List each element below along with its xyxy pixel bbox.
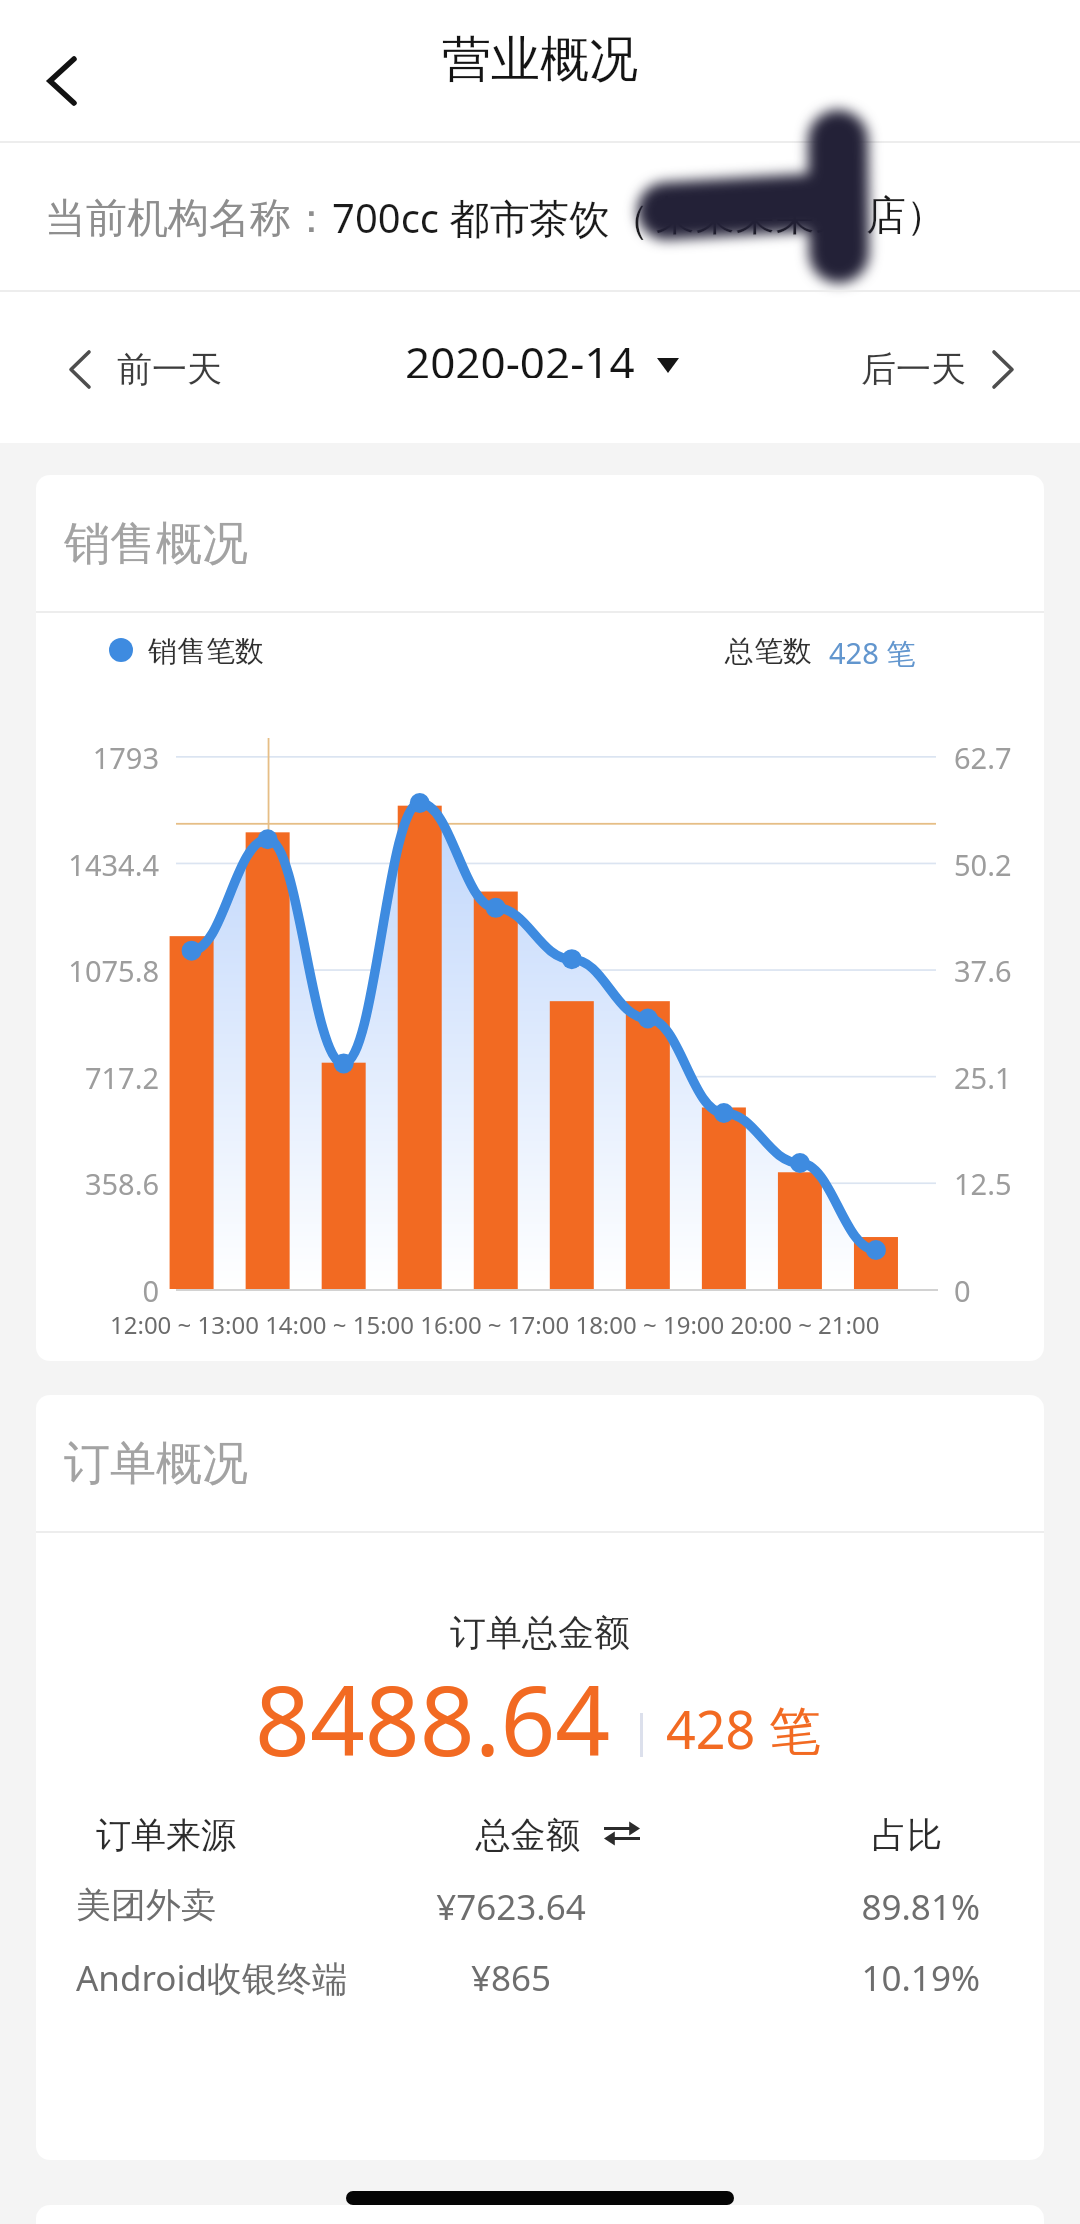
staticText: 12:00 ~ 13:00 14:00 ~ 15:00 16:00 ~ 17:0… xyxy=(110,1308,880,1341)
staticText: 订单概况 xyxy=(64,1435,248,1493)
staticText: 当前机构名称： xyxy=(45,193,332,245)
staticText: 50.2 xyxy=(954,845,1044,884)
staticText: 1793 xyxy=(36,738,159,777)
staticText: ¥7623.64 xyxy=(361,1883,661,1931)
staticText: 后一天 xyxy=(861,347,966,391)
staticText: 62.7 xyxy=(954,738,1044,777)
staticText: 0 xyxy=(954,1271,1044,1310)
staticText: 8488.64 xyxy=(255,1653,611,1784)
staticText: Android收银终端 xyxy=(76,1954,348,2002)
staticText: 2020-02-14 xyxy=(405,332,635,378)
staticText: 89.81% xyxy=(680,1883,980,1931)
staticText: 12.5 xyxy=(954,1164,1044,1203)
staticText: 25.1 xyxy=(954,1058,1044,1097)
staticText: 717.2 xyxy=(36,1058,159,1097)
button[interactable]: 后一天 xyxy=(851,339,1022,399)
staticText: 1075.8 xyxy=(36,951,159,990)
staticText: 某某某某某 xyxy=(655,190,855,240)
staticText: 700cc 都市茶饮（ xyxy=(332,190,650,245)
staticText: 37.6 xyxy=(954,951,1044,990)
staticText: 358.6 xyxy=(36,1164,159,1203)
staticText: 428 笔 xyxy=(829,633,916,673)
staticText: 428 笔 xyxy=(666,1693,821,1764)
staticText: 1434.4 xyxy=(36,845,159,884)
staticText: 10.19% xyxy=(680,1954,980,2002)
staticText: 0 xyxy=(36,1271,159,1310)
staticText: 美团外卖 xyxy=(76,1883,216,1927)
button[interactable]: 2020-02-14 xyxy=(397,324,685,386)
staticText: 总笔数 xyxy=(725,633,812,670)
staticText: 订单来源 xyxy=(96,1813,236,1857)
staticText: 占比 xyxy=(642,1813,942,1857)
staticText: 销售概况 xyxy=(64,515,248,573)
staticText: 营业概况 xyxy=(442,29,638,91)
button[interactable]: Back xyxy=(21,41,99,119)
staticText: 销售笔数 xyxy=(148,633,264,670)
staticText: 前一天 xyxy=(117,347,222,391)
staticText: 订单总金额 xyxy=(36,1610,1044,1655)
staticText: 店） xyxy=(866,190,946,240)
staticText: 总金额 xyxy=(378,1813,678,1857)
staticText: ¥865 xyxy=(361,1954,661,2002)
button[interactable]: 前一天 xyxy=(63,339,230,399)
